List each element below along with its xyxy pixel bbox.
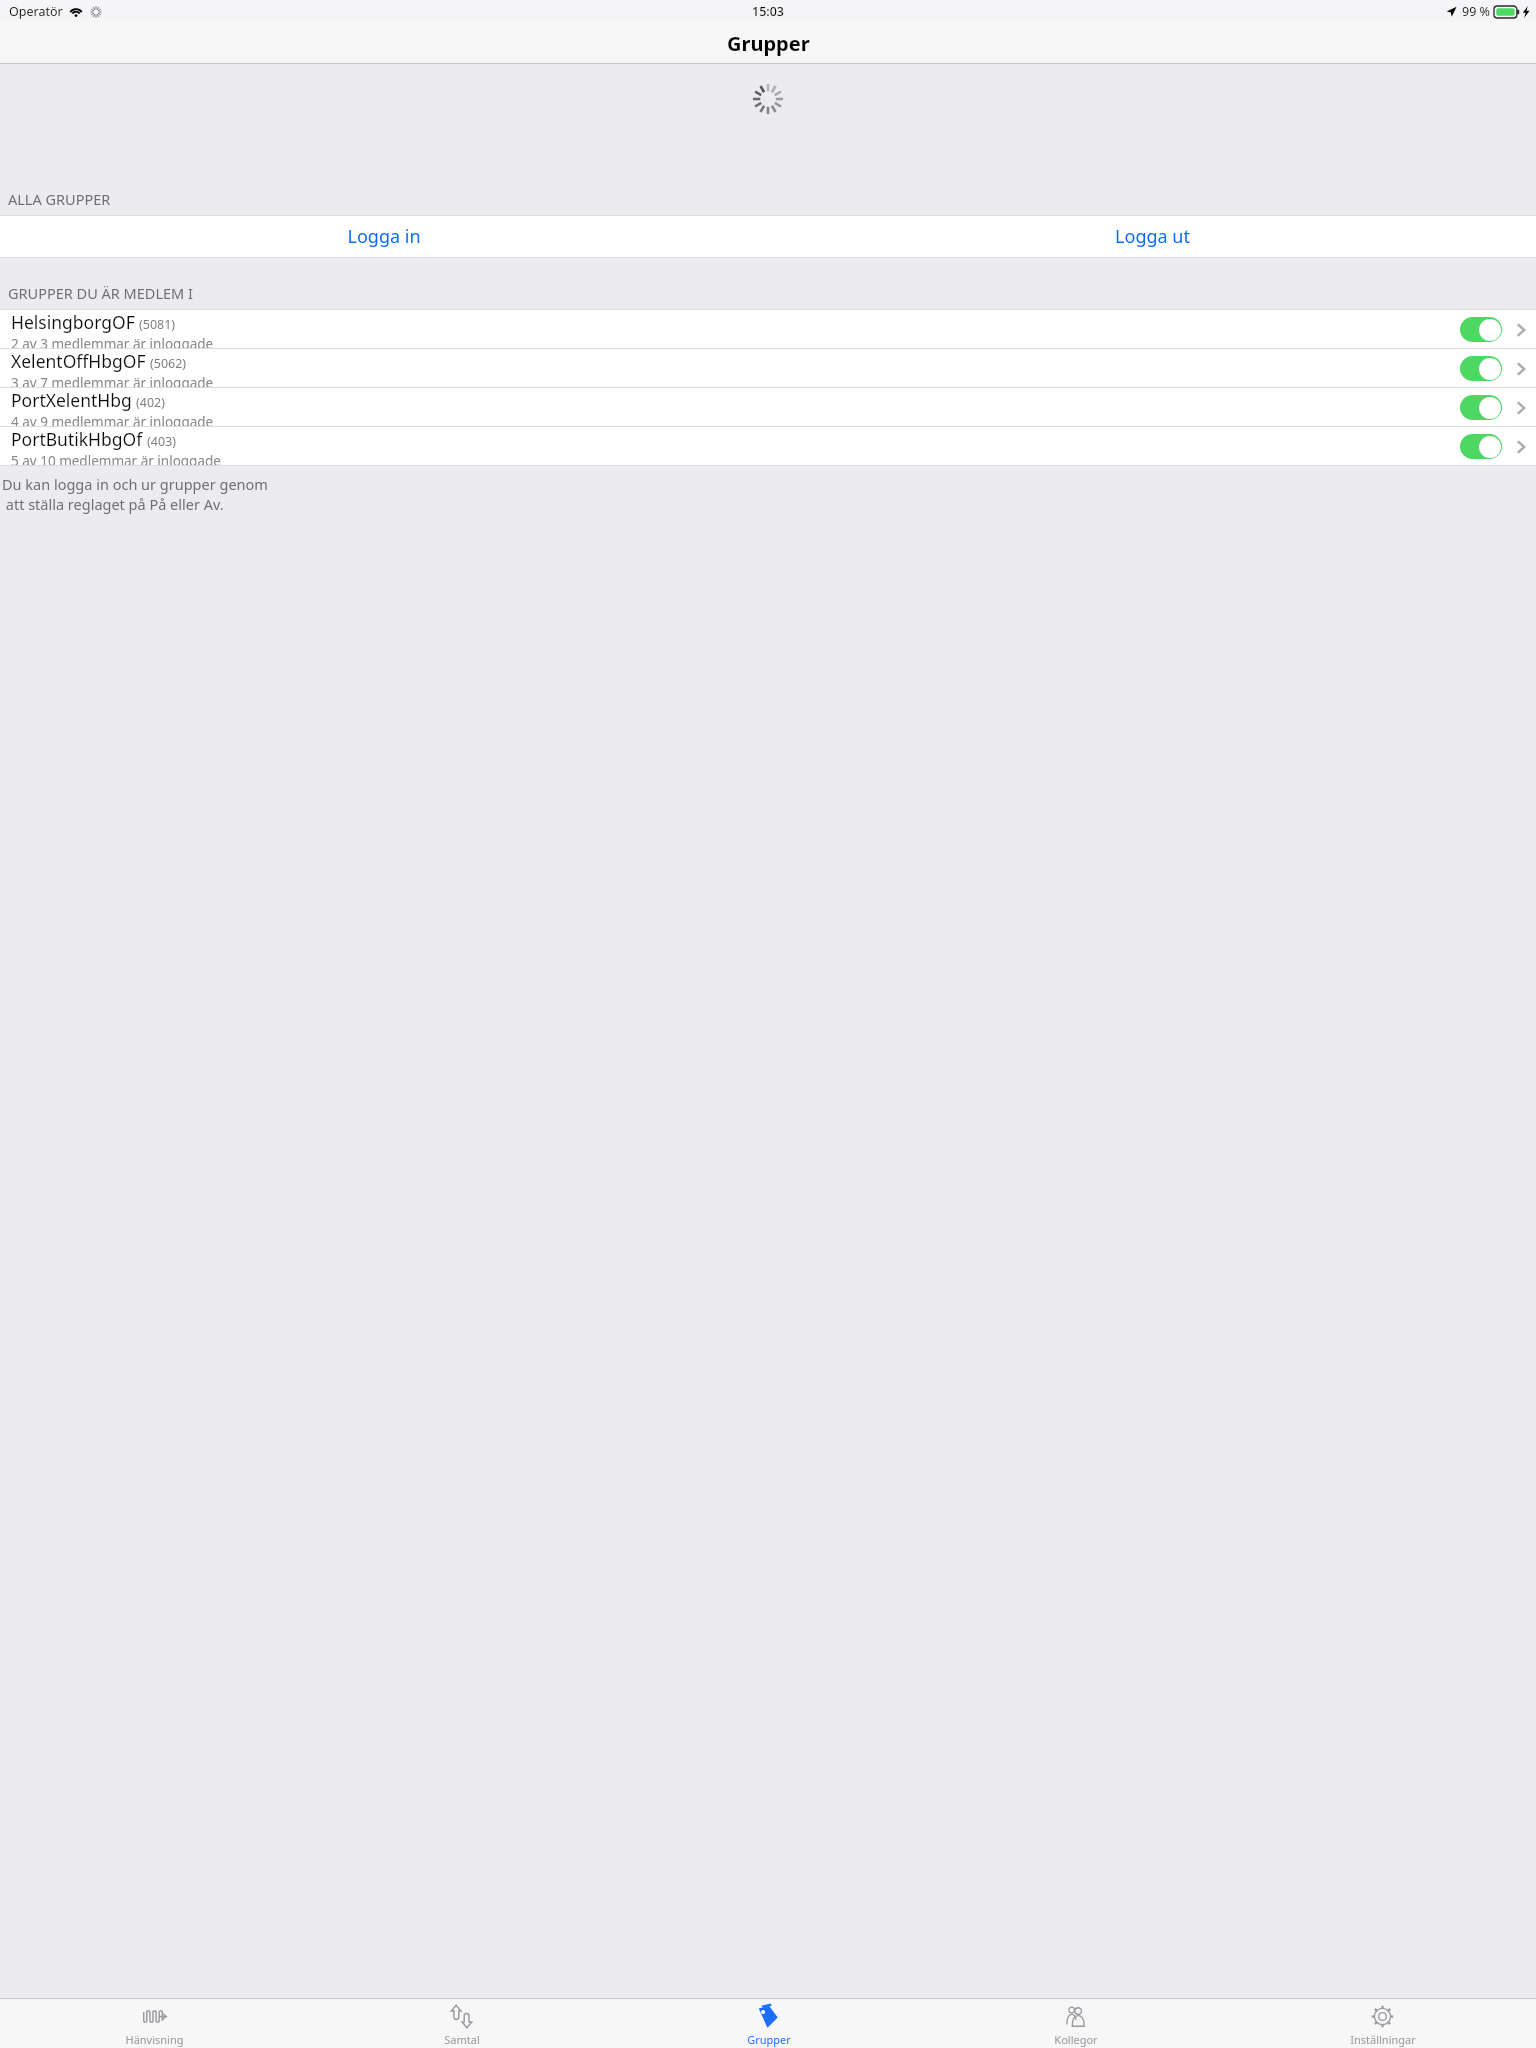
staticText: 15:03	[752, 3, 785, 20]
other: Visa gruppdetaljer	[1516, 360, 1526, 378]
staticText: Du kan logga in och ur grupper genom	[2, 474, 268, 494]
staticText: (5081)	[139, 316, 176, 333]
staticText: 2 av 3 medlemmar är inloggade	[11, 335, 214, 348]
staticText: Logga in	[347, 224, 421, 249]
staticText: ALLA GRUPPER	[8, 189, 111, 209]
staticText: Kollegor	[1054, 2032, 1098, 2047]
button[interactable]: HelsingborgOF	[0, 310, 1536, 348]
button[interactable]: Inställningar	[1229, 1998, 1536, 2048]
button[interactable]: Logga in	[0, 215, 768, 258]
other: Visa gruppdetaljer	[1516, 399, 1526, 417]
staticText: PortButikHbgOf	[11, 427, 143, 451]
staticText: (5062)	[150, 355, 187, 372]
button[interactable]: Logga ut	[768, 215, 1536, 258]
button[interactable]: Logga in i grupp	[1460, 317, 1502, 342]
staticText: 3 av 7 medlemmar är inloggade	[11, 374, 214, 387]
staticText: Grupper	[727, 30, 810, 57]
button[interactable]: Logga in i grupp	[1460, 434, 1502, 459]
button[interactable]: PortXelentHbg	[0, 388, 1536, 426]
staticText: GRUPPER DU ÄR MEDLEM I	[8, 283, 193, 303]
staticText: (402)	[136, 394, 165, 411]
button[interactable]: Logga in i grupp	[1460, 395, 1502, 420]
staticText: Samtal	[444, 2032, 480, 2047]
staticText: 99 %	[1462, 3, 1490, 20]
button[interactable]: PortButikHbgOf	[0, 427, 1536, 465]
button[interactable]: XelentOffHbgOF	[0, 349, 1536, 387]
button[interactable]: Samtal	[308, 1998, 615, 2048]
staticText: HelsingborgOF	[11, 310, 135, 334]
button[interactable]: Hänvisning	[0, 1998, 308, 2048]
button[interactable]: Logga in i grupp	[1460, 356, 1502, 381]
staticText: Inställningar	[1350, 2032, 1416, 2047]
staticText: Logga ut	[1115, 224, 1190, 249]
staticText: 5 av 10 medlemmar är inloggade	[11, 452, 221, 465]
staticText: (403)	[147, 433, 176, 450]
staticText: att ställa reglaget på På eller Av.	[2, 494, 224, 514]
other: Visa gruppdetaljer	[1516, 321, 1526, 339]
other: Visa gruppdetaljer	[1516, 438, 1526, 456]
staticText: Hänvisning	[125, 2032, 184, 2047]
staticText: 4 av 9 medlemmar är inloggade	[11, 413, 214, 426]
button[interactable]: Kollegor	[922, 1998, 1229, 2048]
staticText: PortXelentHbg	[11, 388, 132, 412]
button[interactable]: Grupper	[615, 1998, 922, 2048]
staticText: Grupper	[747, 2032, 791, 2047]
staticText: XelentOffHbgOF	[11, 349, 146, 373]
staticText: Operatör	[9, 3, 63, 20]
